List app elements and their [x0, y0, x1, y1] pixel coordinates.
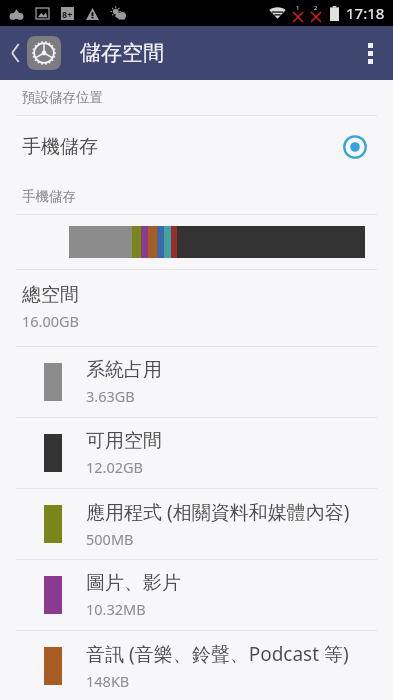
staticText: 3.63GB [86, 386, 135, 406]
staticText: 圖片、影片 [86, 571, 181, 595]
staticText: 可用空間 [86, 429, 162, 453]
staticText: 預設儲存位置 [22, 89, 103, 106]
button[interactable]: 可用空間 [0, 418, 393, 488]
staticText: 音訊 (音樂、鈴聲、Podcast 等) [86, 641, 349, 667]
staticText: 系統占用 [86, 358, 162, 382]
staticText: 500MB [86, 529, 134, 549]
button[interactable]: 系統占用 [0, 347, 393, 417]
button[interactable]: 圖片、影片 [0, 560, 393, 630]
staticText: 儲存空間 [80, 40, 164, 66]
staticText: 16.00GB [22, 311, 80, 331]
button[interactable]: 音訊 (音樂、鈴聲、Podcast 等) [0, 631, 393, 700]
staticText: 手機儲存 [22, 188, 76, 205]
staticText: 1 [296, 4, 300, 12]
staticText: 10.32MB [86, 599, 146, 619]
button[interactable]: 總空間 [0, 270, 393, 346]
staticText: 17:18 [346, 3, 385, 23]
staticText: 總空間 [22, 283, 79, 307]
button[interactable]: 應用程式 (相關資料和媒體內容) [0, 489, 393, 559]
staticText: 2 [314, 4, 318, 12]
button[interactable]: More options [347, 26, 393, 80]
button[interactable]: 手機儲存 [0, 116, 393, 178]
button[interactable]: Back [0, 26, 67, 80]
staticText: 手機儲存 [22, 135, 343, 159]
staticText: 12.02GB [86, 457, 144, 477]
staticText: 148KB [86, 671, 130, 691]
staticText: 應用程式 (相關資料和媒體內容) [86, 499, 350, 525]
staticText: 8+ [62, 8, 73, 20]
